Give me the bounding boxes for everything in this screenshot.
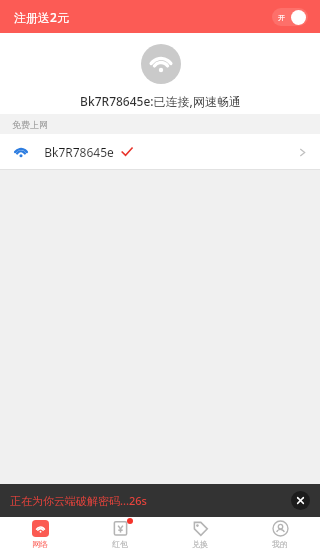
staticText: 网络 [32, 539, 48, 549]
staticText: 免费上网 [12, 119, 48, 130]
staticText: 正在为你云端破解密码...26s [10, 493, 147, 508]
button[interactable]: 兑换 [160, 517, 240, 552]
button[interactable]: 红包 [80, 517, 160, 552]
staticText: Bk7R78645e [44, 144, 114, 160]
staticText: 我的 [272, 539, 288, 549]
staticText: 注册送2元 [14, 9, 69, 25]
button[interactable]: Close [291, 491, 310, 510]
staticText: 开 [278, 13, 285, 22]
button[interactable]: 网络 [0, 517, 80, 552]
button[interactable]: Bk7R78645e [0, 134, 320, 170]
button[interactable]: 我的 [240, 517, 320, 552]
button[interactable]: Toggle on [272, 8, 308, 26]
staticText: 兑换 [192, 539, 208, 549]
staticText: Bk7R78645e:已连接,网速畅通 [80, 93, 241, 109]
staticText: 红包 [112, 539, 128, 549]
